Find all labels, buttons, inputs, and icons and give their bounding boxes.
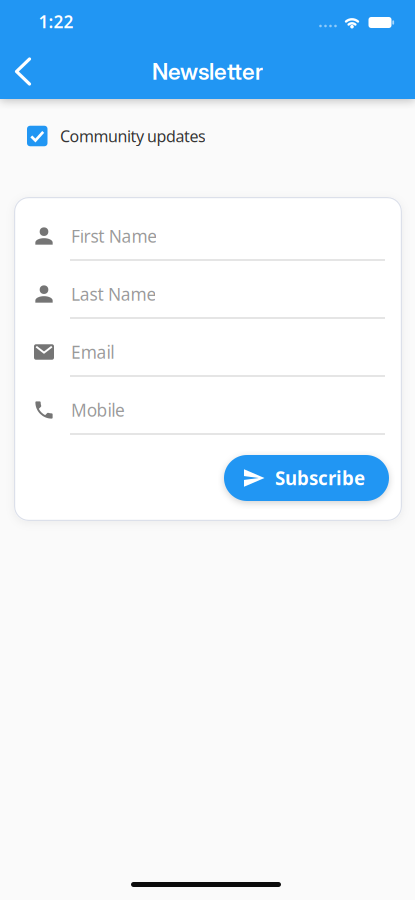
staticText: Newsletter: [152, 58, 263, 85]
staticText: Community updates: [60, 125, 206, 147]
button[interactable]: Community updates: [27, 125, 206, 146]
staticText: Email: [71, 340, 114, 363]
button[interactable]: Subscribe: [224, 455, 389, 501]
button[interactable]: Back: [6, 49, 39, 94]
staticText: First Name: [71, 224, 157, 247]
staticText: Mobile: [71, 398, 125, 421]
staticText: Subscribe: [275, 466, 365, 490]
staticText: Last Name: [71, 282, 156, 305]
staticText: 1:22: [38, 10, 73, 33]
